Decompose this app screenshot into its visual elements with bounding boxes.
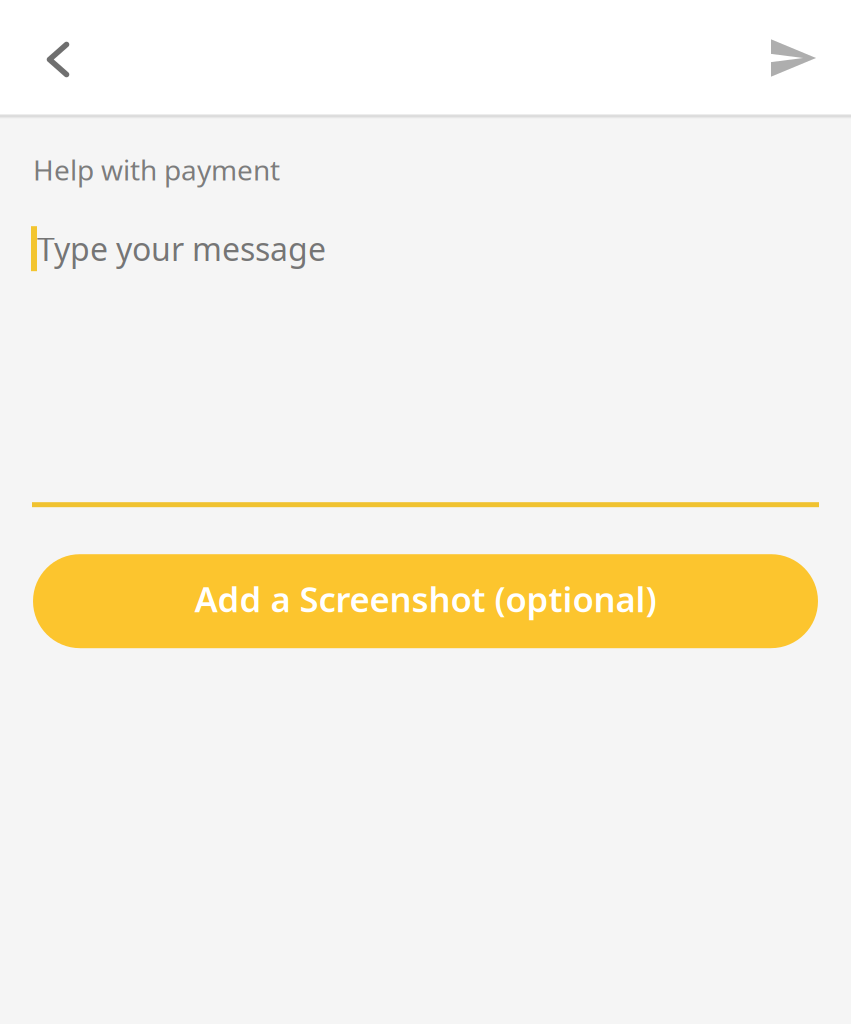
button[interactable]: Send — [711, 0, 851, 114]
staticText: Help with payment — [33, 151, 280, 188]
button[interactable]: Back — [0, 0, 140, 114]
staticText: Type your message — [37, 227, 326, 270]
button[interactable]: Type your message — [0, 188, 851, 502]
staticText: Add a Screenshot (optional) — [194, 576, 656, 622]
button[interactable]: Add a Screenshot (optional) — [33, 554, 818, 648]
